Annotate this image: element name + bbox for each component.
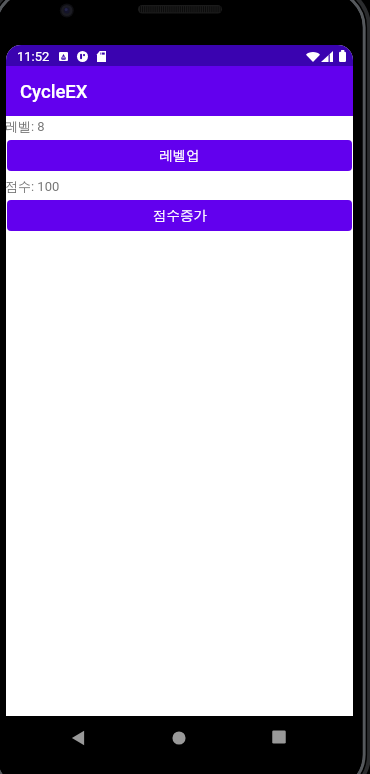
staticText: 점수: 100 xyxy=(6,178,60,194)
button[interactable]: Recent apps xyxy=(259,722,299,752)
button[interactable]: Back xyxy=(58,723,98,753)
staticText: 점수증가 xyxy=(153,207,207,224)
staticText: 레벨: 8 xyxy=(6,118,45,134)
staticText: 11:52 xyxy=(17,49,50,64)
button[interactable]: Home xyxy=(159,723,199,753)
staticText: CycleEX xyxy=(20,81,88,103)
button[interactable]: 점수증가 xyxy=(7,200,352,231)
button[interactable]: 레벨업 xyxy=(7,140,352,171)
staticText: 레벨업 xyxy=(159,147,200,164)
